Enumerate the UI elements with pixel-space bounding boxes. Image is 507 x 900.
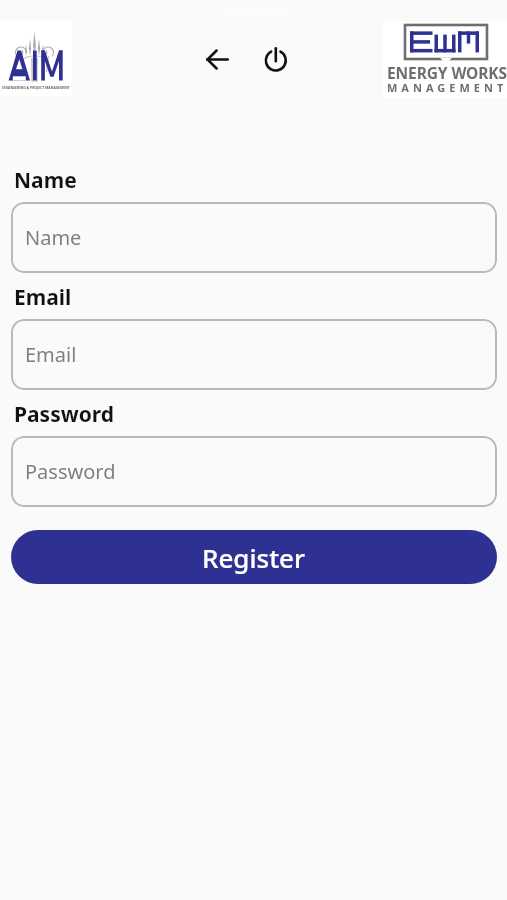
staticText: Email bbox=[14, 283, 72, 312]
staticText: Name bbox=[14, 166, 77, 195]
staticText: Password bbox=[25, 458, 116, 485]
button[interactable]: Register bbox=[11, 530, 497, 584]
button[interactable]: Back bbox=[197, 39, 238, 80]
button[interactable]: Email bbox=[11, 319, 497, 390]
button[interactable]: Power bbox=[255, 39, 296, 80]
button[interactable]: Name bbox=[11, 202, 497, 273]
staticText: Name bbox=[25, 224, 82, 251]
staticText: Register bbox=[202, 540, 306, 575]
staticText: ENERGY WORKS bbox=[387, 62, 507, 83]
staticText: MANAGEMENT bbox=[387, 80, 507, 95]
staticText: Password bbox=[14, 400, 115, 429]
staticText: Email bbox=[25, 341, 77, 368]
button[interactable]: Password bbox=[11, 436, 497, 507]
staticText: ENGINEERING & PROJECT MANAGEMENT bbox=[2, 85, 70, 90]
